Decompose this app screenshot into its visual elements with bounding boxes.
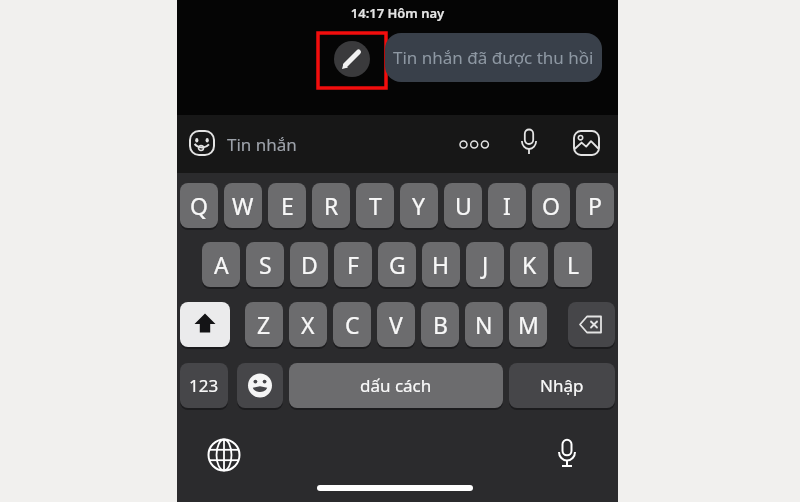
staticText: X	[301, 309, 315, 340]
button[interactable]: R	[312, 183, 350, 228]
button[interactable]	[521, 129, 537, 159]
button[interactable]: P	[576, 183, 614, 228]
button[interactable]	[558, 439, 576, 471]
staticText: O	[542, 190, 560, 221]
staticText: L	[567, 249, 580, 280]
button[interactable]: Nhập	[509, 363, 615, 408]
button[interactable]	[237, 363, 283, 408]
button[interactable]: Q	[180, 183, 218, 228]
button[interactable]: Z	[245, 302, 283, 347]
button[interactable]: Tin nhắn đã được thu hồi	[385, 33, 602, 82]
staticText: U	[455, 190, 472, 221]
button[interactable]: dấu cách	[289, 363, 503, 408]
button[interactable]: F	[334, 242, 372, 287]
button[interactable]: K	[510, 242, 548, 287]
button[interactable]: L	[554, 242, 592, 287]
staticText: S	[259, 249, 272, 280]
staticText: I	[503, 190, 511, 221]
staticText: G	[389, 249, 406, 280]
button[interactable]: J	[466, 242, 504, 287]
button[interactable]: C	[333, 302, 371, 347]
button[interactable]	[458, 138, 491, 152]
button[interactable]: S	[246, 242, 284, 287]
staticText: Q	[190, 190, 208, 221]
staticText: N	[475, 309, 493, 340]
staticText: Z	[257, 309, 271, 340]
staticText: W	[232, 190, 254, 221]
button[interactable]: H	[422, 242, 460, 287]
button[interactable]: M	[509, 302, 547, 347]
button[interactable]: G	[378, 242, 416, 287]
staticText: R	[324, 190, 339, 221]
button[interactable]: B	[421, 302, 459, 347]
staticText: Y	[412, 190, 426, 221]
staticText: F	[347, 249, 359, 280]
staticText: Tin nhắn	[227, 133, 297, 156]
button[interactable]: T	[356, 183, 394, 228]
button[interactable]: O	[532, 183, 570, 228]
button[interactable]	[573, 130, 600, 156]
button[interactable]: W	[224, 183, 262, 228]
button[interactable]: D	[290, 242, 328, 287]
button[interactable]: I	[488, 183, 526, 228]
staticText: P	[588, 190, 602, 221]
staticText: M	[518, 309, 539, 340]
button[interactable]: 123	[180, 363, 228, 408]
button[interactable]: N	[465, 302, 503, 347]
staticText: J	[482, 249, 489, 280]
button[interactable]: Y	[400, 183, 438, 228]
staticText: 123	[189, 374, 219, 397]
button[interactable]	[180, 302, 230, 347]
button[interactable]: X	[289, 302, 327, 347]
staticText: Tin nhắn đã được thu hồi	[393, 46, 594, 69]
button[interactable]	[206, 437, 242, 473]
staticText: A	[214, 249, 229, 280]
staticText: K	[522, 249, 537, 280]
button[interactable]	[334, 41, 370, 77]
button[interactable]	[189, 130, 215, 156]
button[interactable]: A	[202, 242, 240, 287]
button[interactable]: V	[377, 302, 415, 347]
staticText: V	[389, 309, 403, 340]
staticText: dấu cách	[360, 374, 432, 397]
button[interactable]: U	[444, 183, 482, 228]
staticText: D	[301, 249, 318, 280]
button[interactable]: E	[268, 183, 306, 228]
staticText: B	[433, 309, 448, 340]
staticText: E	[281, 190, 294, 221]
staticText: Nhập	[540, 374, 584, 397]
staticText: C	[345, 309, 360, 340]
staticText: 14:17 Hôm nay	[177, 4, 618, 22]
button[interactable]	[568, 302, 615, 347]
staticText: T	[369, 190, 382, 221]
staticText: H	[432, 249, 450, 280]
